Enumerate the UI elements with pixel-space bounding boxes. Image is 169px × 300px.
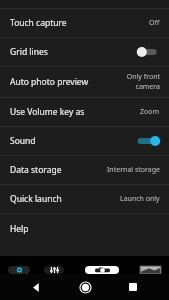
staticText: Launch only <box>120 194 160 204</box>
button[interactable]: Toggle <box>136 134 160 148</box>
button[interactable]: Use Volume key as <box>0 98 169 126</box>
button[interactable]: Help <box>0 214 169 244</box>
staticText: Quick launch <box>10 193 62 205</box>
button[interactable]: Recent apps <box>120 274 146 300</box>
staticText: Sound <box>10 135 36 147</box>
staticText: Use Volume key as <box>10 106 85 118</box>
staticText: camera <box>135 82 160 92</box>
staticText: Only front <box>126 72 160 82</box>
button[interactable]: Auto photo preview <box>0 67 169 97</box>
staticText: Zoom <box>140 107 160 117</box>
staticText: Off <box>149 18 160 28</box>
staticText: Grid lines <box>10 46 48 58</box>
button[interactable]: Data storage <box>0 156 169 184</box>
button[interactable]: Modes <box>44 266 64 274</box>
button[interactable]: Back <box>23 274 49 300</box>
button[interactable]: Gallery <box>140 266 161 274</box>
staticText: Help <box>10 223 29 235</box>
staticText: Data storage <box>10 164 62 176</box>
button[interactable]: Toggle <box>136 45 160 59</box>
button[interactable]: Settings <box>8 266 30 274</box>
button[interactable]: Touch capture <box>0 9 169 37</box>
button[interactable]: Home <box>72 274 98 300</box>
button[interactable]: Grid lines <box>0 38 169 66</box>
button[interactable]: Shutter <box>85 266 119 274</box>
button[interactable]: Sound <box>0 127 169 155</box>
staticText: Auto photo preview <box>10 76 89 88</box>
staticText: Internal storage <box>107 165 160 175</box>
staticText: Touch capture <box>10 17 67 29</box>
button[interactable]: Quick launch <box>0 185 169 213</box>
